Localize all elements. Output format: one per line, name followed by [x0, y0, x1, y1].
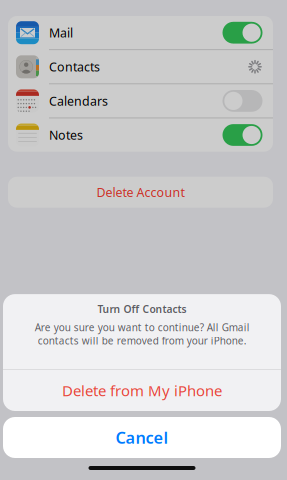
staticText: Mail	[49, 24, 73, 41]
button[interactable]: Contacts	[8, 50, 273, 83]
button[interactable]: Delete Account	[8, 177, 273, 208]
button[interactable]: Notes	[8, 118, 273, 152]
staticText: Are you sure you want to continue? All G…	[34, 321, 249, 347]
button[interactable]: Calendars	[8, 84, 273, 118]
button[interactable]: Cancel	[3, 417, 281, 458]
staticText: Cancel	[115, 427, 168, 448]
staticText: Delete Account	[96, 184, 184, 200]
staticText: Delete from My iPhone	[62, 381, 222, 400]
staticText: Contacts	[49, 59, 100, 75]
staticText: Turn Off Contacts	[97, 302, 186, 316]
button[interactable]: Delete from My iPhone	[3, 370, 281, 411]
button[interactable]: Mail	[8, 16, 273, 49]
staticText: Notes	[49, 127, 83, 143]
staticText: Calendars	[49, 93, 108, 109]
